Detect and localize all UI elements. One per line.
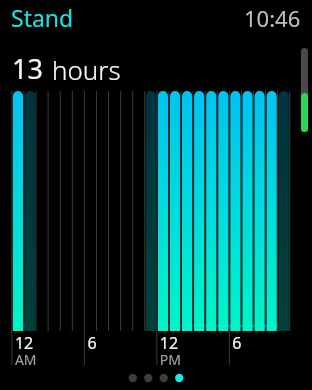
button[interactable]: Stand activity chart <box>0 0 312 390</box>
